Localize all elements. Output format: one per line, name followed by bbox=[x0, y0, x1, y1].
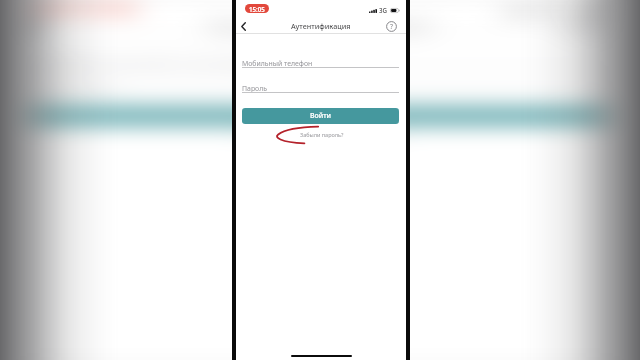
staticText: 15:05 bbox=[249, 5, 265, 13]
button[interactable]: Help bbox=[562, 20, 607, 32]
staticText: Аутентификация bbox=[291, 21, 351, 31]
button[interactable]: Войти bbox=[23, 108, 614, 124]
staticText: 3G bbox=[379, 6, 388, 14]
staticText: Аутентификация bbox=[207, 21, 433, 31]
button[interactable]: Забыли пароль? bbox=[300, 131, 344, 138]
staticText: Войти bbox=[310, 111, 332, 121]
staticText: Пароль bbox=[23, 84, 117, 93]
button[interactable]: Back bbox=[0, 19, 53, 34]
staticText: ? bbox=[390, 22, 393, 31]
button[interactable]: Мобильный телефон bbox=[236, 56, 406, 69]
button[interactable]: Забыли пароль? bbox=[241, 131, 407, 138]
button[interactable]: Мобильный телефон bbox=[0, 56, 640, 69]
staticText: Войти bbox=[279, 111, 362, 121]
button[interactable]: Войти bbox=[242, 108, 399, 124]
button[interactable]: Back bbox=[236, 19, 250, 34]
button[interactable]: Help bbox=[385, 20, 397, 32]
button[interactable]: Пароль bbox=[0, 81, 640, 94]
button[interactable]: Пароль bbox=[236, 81, 406, 94]
staticText: Мобильный телефон bbox=[242, 59, 313, 68]
staticText: 15:05 bbox=[53, 5, 113, 13]
staticText: 3G bbox=[539, 6, 573, 14]
staticText: Мобильный телефон bbox=[23, 59, 290, 68]
staticText: ? bbox=[580, 22, 592, 31]
staticText: Пароль bbox=[242, 84, 267, 93]
